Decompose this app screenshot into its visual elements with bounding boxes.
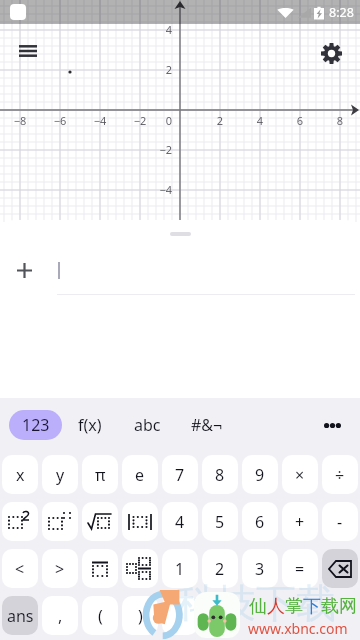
staticText: −2 <box>144 142 172 157</box>
staticText: −8 <box>6 113 34 128</box>
staticText: 8 <box>215 464 225 486</box>
staticText: - <box>337 511 343 533</box>
staticText: π <box>95 464 106 486</box>
staticText: 载 <box>321 595 339 618</box>
button[interactable]: 4 <box>162 502 198 541</box>
button[interactable]: ans <box>2 596 38 635</box>
staticText: 0 <box>144 113 172 128</box>
button[interactable]: = <box>282 549 318 588</box>
other: Backspace <box>322 549 358 588</box>
staticText: 网 <box>339 595 357 618</box>
staticText: x <box>16 464 25 486</box>
staticText: e <box>135 464 145 486</box>
staticText: 掌 <box>285 595 303 618</box>
staticText: −4 <box>144 182 172 197</box>
button[interactable]: abc <box>134 414 161 436</box>
staticText: 3 <box>255 558 265 580</box>
staticText: f(x) <box>78 414 102 436</box>
button[interactable]: - <box>322 502 358 541</box>
staticText: 人 <box>267 595 285 618</box>
button[interactable]: 6 <box>242 502 278 541</box>
staticText: −6 <box>46 113 74 128</box>
staticText: abc <box>134 414 161 436</box>
staticText: 8:28 <box>329 4 354 21</box>
staticText: 8 <box>326 113 354 128</box>
staticText: 6 <box>255 511 265 533</box>
button[interactable]: Add expression <box>4 250 44 290</box>
button[interactable]: Power <box>42 502 78 541</box>
staticText: 仙 <box>249 595 267 618</box>
staticText: 2 <box>144 62 172 77</box>
button[interactable]: × <box>282 455 318 494</box>
button[interactable]: Fraction <box>82 549 118 588</box>
button[interactable]: y <box>42 455 78 494</box>
other: Mixed fraction <box>122 549 158 588</box>
staticText: × <box>295 464 305 486</box>
button[interactable]: π <box>82 455 118 494</box>
button[interactable]: e <box>122 455 158 494</box>
button[interactable]: 1 <box>162 549 198 588</box>
button[interactable]: 8 <box>202 455 238 494</box>
button[interactable]: ( <box>82 596 118 635</box>
staticText: + <box>295 511 305 533</box>
staticText: −4 <box>86 113 114 128</box>
button[interactable]: > <box>42 549 78 588</box>
button[interactable]: ) <box>122 596 158 635</box>
staticText: 0 <box>215 605 225 627</box>
staticText: 下 <box>303 595 321 618</box>
staticText: 6 <box>286 113 314 128</box>
staticText: > <box>55 558 65 580</box>
staticText: . <box>178 605 183 627</box>
staticText: 2 <box>206 113 234 128</box>
staticText: y <box>56 464 65 486</box>
staticText: 4 <box>144 22 172 37</box>
staticText: 9 <box>255 464 265 486</box>
other: Fraction <box>82 549 118 588</box>
staticText: ( <box>98 605 103 627</box>
staticText: 2 <box>215 558 225 580</box>
staticText: , <box>58 605 63 627</box>
staticText: www.xbnc.com <box>248 619 348 638</box>
staticText: < <box>15 558 25 580</box>
staticText: 4 <box>175 511 185 533</box>
other: Absolute value <box>122 502 158 541</box>
staticText: 7 <box>175 464 185 486</box>
button[interactable]: , <box>42 596 78 635</box>
button[interactable]: + <box>282 502 318 541</box>
button[interactable]: Absolute value <box>122 502 158 541</box>
staticText: 123 <box>22 414 50 436</box>
other: Square root <box>82 502 118 541</box>
button[interactable]: 9 <box>242 455 278 494</box>
button[interactable]: 0 <box>202 596 238 635</box>
staticText: = <box>295 558 305 580</box>
button[interactable]: f(x) <box>78 414 102 436</box>
staticText: ÷ <box>335 464 345 486</box>
staticText: −2 <box>126 113 154 128</box>
staticText: 5 <box>215 511 225 533</box>
staticText: 4 <box>246 113 274 128</box>
staticText: 1 <box>175 558 185 580</box>
button[interactable]: Mixed fraction <box>122 549 158 588</box>
button[interactable]: #&¬ <box>191 414 223 436</box>
other: Power <box>42 502 78 541</box>
button[interactable]: . <box>162 596 198 635</box>
staticText: ) <box>138 605 143 627</box>
button[interactable]: More options <box>314 407 350 443</box>
button[interactable]: 3 <box>242 549 278 588</box>
button[interactable]: ÷ <box>322 455 358 494</box>
staticText: 科技下载 <box>176 578 336 628</box>
button[interactable]: 2 <box>202 549 238 588</box>
button[interactable]: Square root <box>82 502 118 541</box>
other: Square <box>2 502 38 541</box>
button[interactable]: x <box>2 455 38 494</box>
button[interactable]: Square <box>2 502 38 541</box>
button[interactable]: Settings <box>314 36 348 70</box>
button[interactable]: 7 <box>162 455 198 494</box>
button[interactable]: 123 <box>9 410 62 440</box>
button[interactable]: Menu <box>11 34 45 68</box>
button[interactable]: Backspace <box>322 549 358 588</box>
staticText: #&¬ <box>191 414 223 436</box>
button[interactable]: < <box>2 549 38 588</box>
staticText: ans <box>7 605 34 627</box>
button[interactable]: 5 <box>202 502 238 541</box>
